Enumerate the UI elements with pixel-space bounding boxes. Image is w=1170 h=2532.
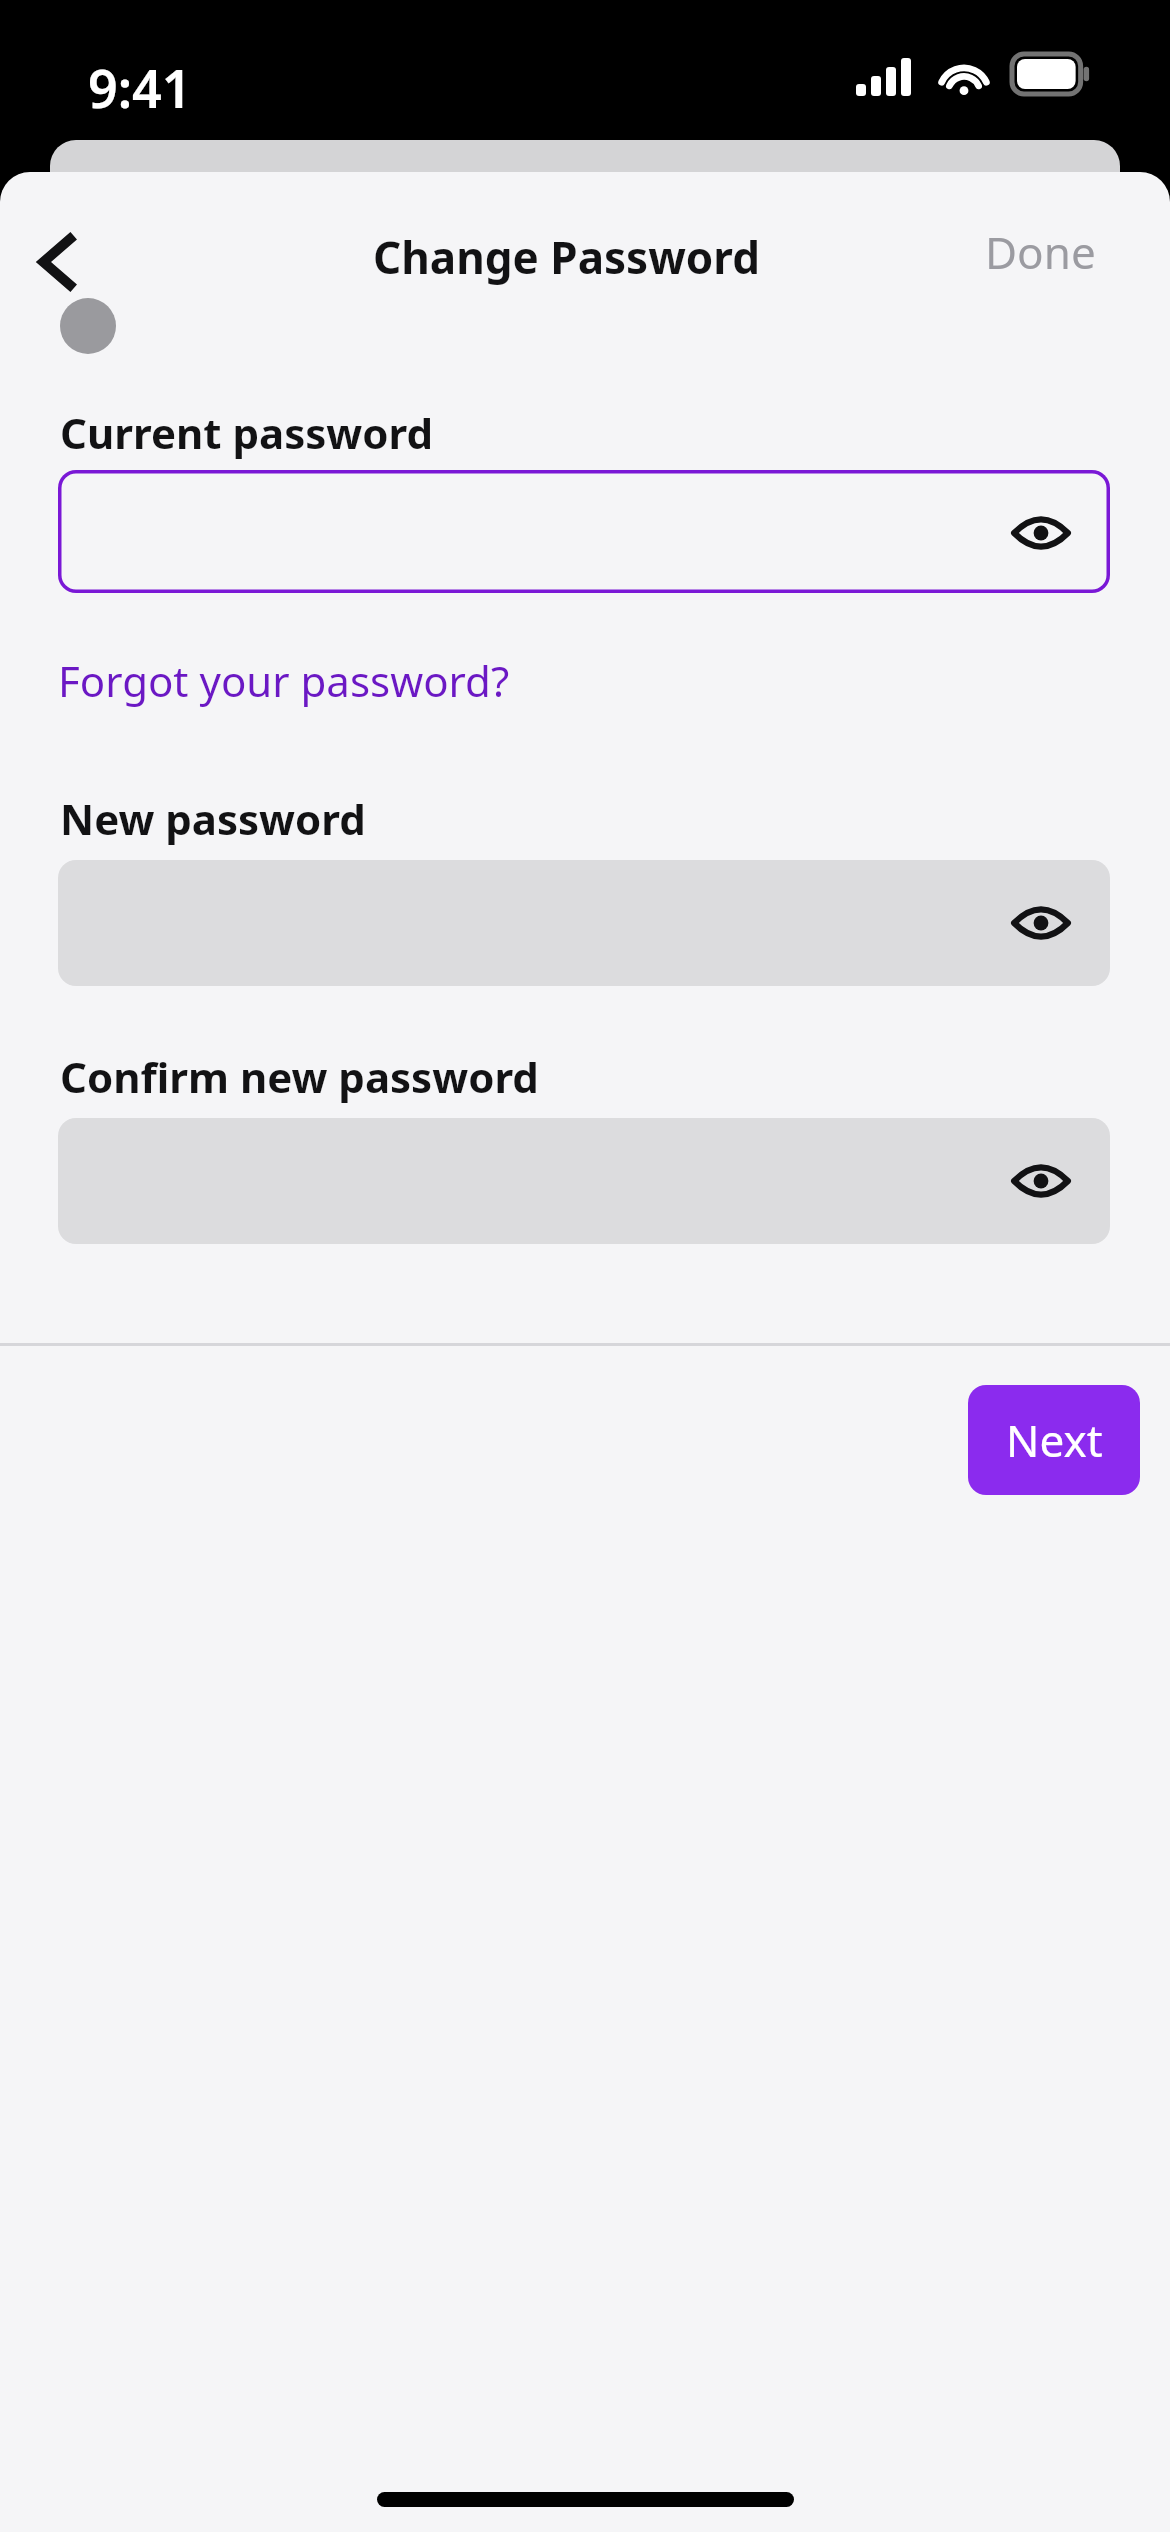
staticText: Done [985,222,1096,282]
button[interactable] [58,860,1110,986]
button[interactable] [58,470,1110,593]
button[interactable]: Back [10,212,100,302]
button[interactable]: Next [968,1385,1140,1495]
staticText: New password [60,790,366,847]
staticText: Confirm new password [60,1048,539,1105]
button[interactable]: Show password [1002,884,1080,962]
button[interactable]: Forgot your password? [58,645,598,715]
staticText: Change Password [373,227,760,287]
staticText: Forgot your password? [58,652,510,709]
staticText: Current password [60,404,434,461]
staticText: 9:41 [88,52,192,123]
button[interactable] [58,1118,1110,1244]
button[interactable]: Done [985,212,1135,292]
button[interactable]: Show password [1002,494,1080,572]
staticText: Next [1006,1410,1103,1470]
button[interactable]: Show password [1002,1142,1080,1220]
